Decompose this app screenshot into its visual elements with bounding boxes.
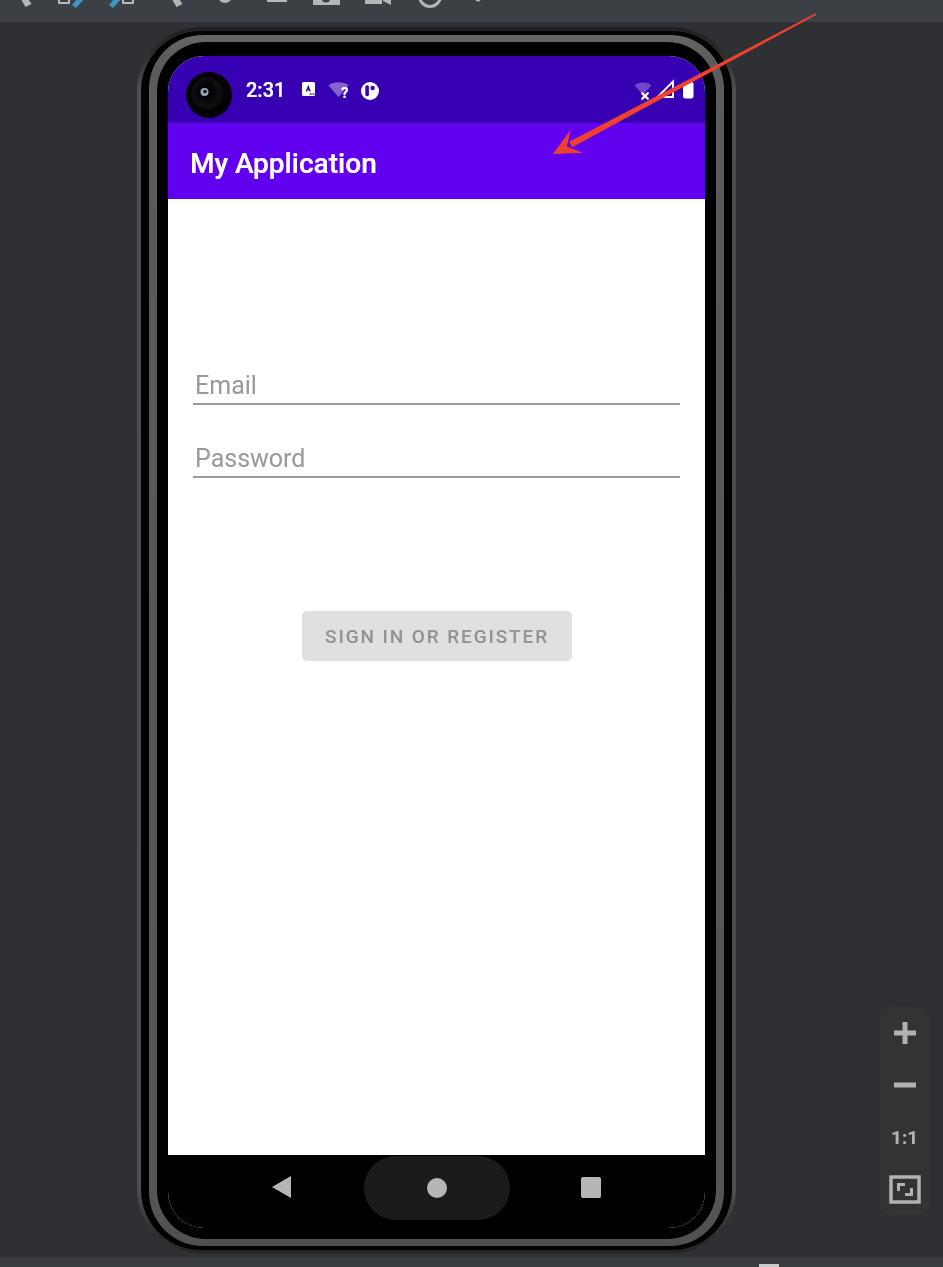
button[interactable]: Zoom to actual size	[880, 1111, 929, 1163]
staticText: SIGN IN OR REGISTER	[325, 625, 549, 647]
button[interactable]: My Application	[168, 123, 705, 199]
button[interactable]: Home	[364, 1156, 510, 1220]
staticText: 2:31	[246, 78, 286, 101]
button[interactable]: Email	[193, 371, 680, 419]
button[interactable]: Zoom to fit screen	[880, 1163, 929, 1215]
button[interactable]: Zoom in	[880, 1007, 929, 1059]
staticText: 1:1	[891, 1126, 919, 1148]
staticText: Email	[195, 371, 257, 400]
button[interactable]: Recent apps	[569, 1165, 613, 1209]
button[interactable]: Password	[193, 444, 680, 492]
staticText: Password	[195, 444, 306, 473]
button[interactable]: Zoom out	[880, 1059, 929, 1111]
button[interactable]: Back	[259, 1165, 303, 1209]
button[interactable]: SIGN IN OR REGISTER	[302, 611, 572, 661]
staticText: My Application	[190, 147, 377, 180]
staticText: ?	[341, 84, 349, 102]
